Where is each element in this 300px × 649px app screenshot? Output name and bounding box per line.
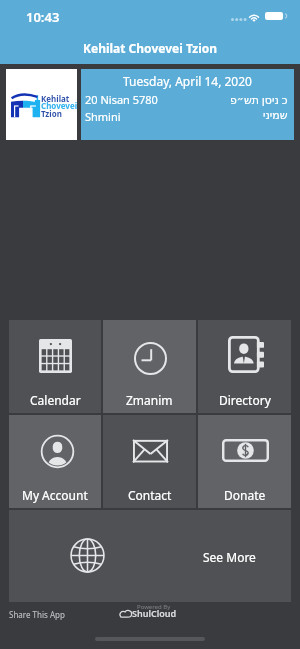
staticText: Kehilat Chovevei Tzion (83, 40, 218, 56)
button[interactable]: Directory (198, 320, 291, 413)
staticText: Tuesday, April 14, 2020 (81, 73, 294, 89)
staticText: 20 Nisan 5780 (85, 92, 158, 107)
button[interactable]: Contact (103, 415, 196, 508)
staticText: 10:43 (26, 8, 60, 26)
staticText: Chovevei (41, 100, 78, 111)
staticText: שמיני (263, 109, 288, 122)
button[interactable]: See More (9, 510, 291, 602)
button[interactable]: Share This App (9, 609, 65, 620)
other: Wi-Fi (248, 12, 260, 21)
button[interactable]: Kehilat Chovevei Tzion logo (6, 69, 77, 140)
staticText: Kehilat (41, 93, 70, 104)
button[interactable]: Zmanim (103, 320, 196, 413)
staticText: ShulCloud (132, 607, 177, 619)
button[interactable]: Tuesday, April 14, 2020 (81, 69, 294, 140)
other: See More (70, 538, 105, 573)
button[interactable]: Donate (198, 415, 291, 508)
staticText: Directory (219, 392, 271, 408)
staticText: My Account (22, 487, 88, 503)
staticText: Powered By (137, 603, 171, 611)
staticText: Contact (128, 487, 172, 503)
button[interactable]: Calendar (9, 320, 101, 413)
button[interactable]: Powered By ShulCloud (118, 602, 182, 620)
staticText: Calendar (30, 392, 81, 408)
staticText: Zmanim (126, 392, 173, 408)
staticText: Shmini (85, 109, 121, 124)
staticText: Tzion (41, 108, 62, 119)
staticText: See More (203, 549, 256, 565)
button[interactable]: My Account (9, 415, 101, 508)
staticText: כ ניסן תש״פ (230, 92, 288, 107)
other: Battery (265, 12, 287, 20)
staticText: Donate (224, 487, 266, 503)
